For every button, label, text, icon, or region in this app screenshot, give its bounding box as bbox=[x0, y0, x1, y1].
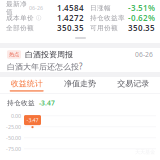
button[interactable]: 收起 bbox=[60, 33, 100, 43]
staticText: -0.62% bbox=[128, 13, 155, 23]
button[interactable]: 热点 bbox=[0, 48, 160, 72]
staticText: 06-26 bbox=[29, 4, 43, 12]
staticText: 06-26 bbox=[135, 50, 153, 59]
staticText: 0.00 bbox=[11, 112, 21, 119]
staticText: 收益统计 bbox=[11, 79, 43, 88]
staticText: 最新净值 bbox=[6, 0, 27, 16]
staticText: 交易记录 bbox=[117, 79, 149, 88]
staticText: 1.4584 bbox=[57, 3, 84, 13]
staticText: 净值走势 bbox=[64, 79, 96, 88]
staticText: 1.4272 bbox=[57, 13, 84, 23]
staticText: 成本单价 bbox=[6, 14, 34, 22]
staticText: -3.47 bbox=[26, 117, 38, 124]
staticText: 350.35 bbox=[128, 23, 155, 33]
button[interactable]: 净值走势 bbox=[53, 77, 107, 93]
button[interactable]: 交易记录 bbox=[107, 77, 160, 93]
staticText: -75.00 bbox=[6, 145, 21, 152]
staticText: ⓘ bbox=[36, 15, 41, 21]
staticText: -25.00 bbox=[6, 123, 21, 130]
staticText: 日涨幅 bbox=[90, 4, 111, 12]
staticText: -3.51% bbox=[128, 3, 155, 13]
button[interactable]: 收益统计 bbox=[0, 77, 53, 93]
staticText: -50.00 bbox=[6, 134, 21, 141]
staticText: -3.47 bbox=[39, 98, 55, 107]
staticText: 持仓收益 bbox=[7, 99, 35, 107]
staticText: 白酒大年后还怎么投? bbox=[7, 61, 82, 72]
staticText: 全部份额 bbox=[6, 24, 34, 32]
staticText: 热点 bbox=[9, 51, 19, 58]
staticText: 白酒投资周报 bbox=[25, 50, 73, 59]
staticText: 持仓收益率 bbox=[90, 14, 125, 22]
staticText: 可用份额 bbox=[90, 24, 118, 32]
staticText: 350.35 bbox=[57, 23, 84, 33]
